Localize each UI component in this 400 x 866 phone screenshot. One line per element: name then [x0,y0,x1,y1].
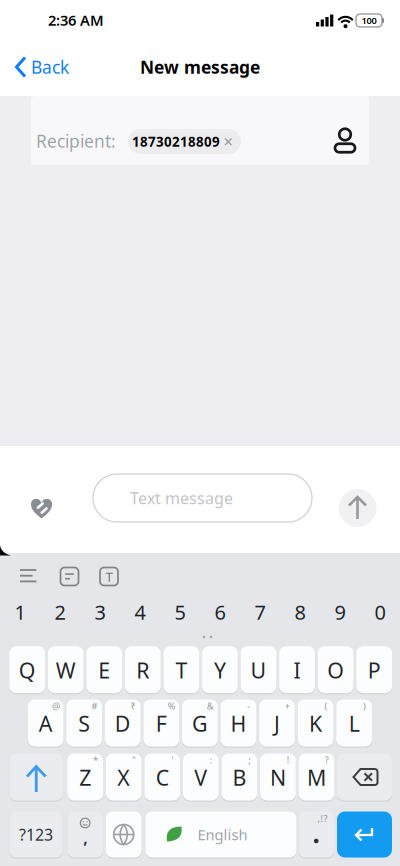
button[interactable]: J [259,699,295,746]
button[interactable]: K [298,699,333,746]
button[interactable]: Y [202,646,238,693]
staticText: A [39,709,53,738]
button[interactable]: Q [9,646,45,693]
staticText: 18730218809 [132,133,220,150]
button[interactable]: T [163,646,199,693]
staticText: P [368,656,381,684]
staticText: Y [214,656,226,684]
staticText: T [105,568,112,585]
staticText: ( [324,700,327,712]
button[interactable]: Shift [9,753,63,800]
button[interactable]: 3 [81,591,119,633]
staticText: C [156,763,169,792]
staticText: N [270,763,286,792]
staticText: V [194,763,207,792]
staticText: Q [19,656,36,684]
button[interactable]: Choose contact [327,122,363,158]
button[interactable]: 4 [121,591,159,633]
button[interactable]: 2 [41,591,79,633]
staticText: J [274,709,280,738]
staticText: H [230,709,246,738]
button[interactable]: Z [67,753,103,800]
button[interactable]: U [241,646,276,693]
button[interactable]: 7 [241,591,279,633]
button[interactable]: P [356,646,392,693]
button[interactable]: E [86,646,122,693]
button[interactable]: A [28,699,63,746]
button[interactable]: Switch keyboard [106,811,141,857]
staticText: * [93,754,98,766]
staticText: O [327,656,344,684]
button[interactable]: Comma [67,811,103,857]
button[interactable]: 9 [321,591,359,633]
button[interactable]: C [144,753,180,800]
button[interactable]: Send [338,489,376,527]
staticText: & [207,700,214,712]
button[interactable]: Menu [14,564,42,588]
button[interactable]: M [299,753,334,800]
button[interactable]: 0 [361,591,399,633]
staticText: W [56,656,76,684]
button[interactable]: D [105,699,141,746]
button[interactable]: Return [337,811,392,857]
staticText: % [168,700,176,712]
staticText: 9 [334,599,345,625]
staticText: R [136,656,149,684]
staticText: 4 [134,599,145,625]
button[interactable]: Symbols [9,811,62,857]
staticText: G [192,709,208,738]
staticText: ,!? [317,812,327,825]
staticText: ? [325,754,329,766]
staticText: 2 [54,599,65,625]
staticText: 5 [174,599,185,625]
staticText: E [98,656,110,684]
button[interactable]: H [221,699,256,746]
button[interactable]: W [48,646,84,693]
staticText: English [197,825,247,844]
button[interactable]: S [66,699,102,746]
staticText: 3 [94,599,105,625]
staticText: , [83,827,87,848]
staticText: : [210,754,213,766]
button[interactable]: Text editing [96,563,122,589]
staticText: ! [287,754,290,766]
button[interactable]: B [221,753,257,800]
staticText: " [132,754,136,766]
button[interactable]: N [260,753,296,800]
staticText: 1 [14,599,25,625]
staticText: K [309,709,322,738]
staticText: New message [140,55,260,78]
staticText: 7 [254,599,265,625]
button[interactable]: R [125,646,161,693]
button[interactable]: Delete [337,753,392,800]
button[interactable]: 1 [1,591,39,633]
button[interactable]: O [318,646,353,693]
button[interactable]: 6 [201,591,239,633]
button[interactable]: Space, English [145,811,296,857]
staticText: U [250,656,266,684]
button[interactable]: Period [298,811,334,857]
button[interactable]: I [279,646,315,693]
staticText: S [78,709,90,738]
staticText: D [115,709,131,738]
button[interactable]: G [182,699,218,746]
staticText: ' [172,754,174,766]
button[interactable]: V [183,753,219,800]
staticText: F [156,709,167,738]
staticText: # [92,700,98,712]
staticText: I [294,656,301,684]
button[interactable]: X [106,753,142,800]
staticText: @ [52,700,60,712]
button[interactable]: 5 [161,591,199,633]
staticText: 2:36 AM [48,10,104,30]
button[interactable]: Stickers [21,489,61,529]
button[interactable]: L [336,699,372,746]
staticText: M [307,763,326,792]
staticText: ) [363,700,366,712]
button[interactable]: 8 [281,591,319,633]
button[interactable]: Text message [93,474,312,522]
button[interactable]: Back [14,45,86,89]
button[interactable]: Clipboard [56,563,82,589]
button[interactable]: Remove recipient 18730218809 [128,129,241,154]
button[interactable]: F [143,699,179,746]
